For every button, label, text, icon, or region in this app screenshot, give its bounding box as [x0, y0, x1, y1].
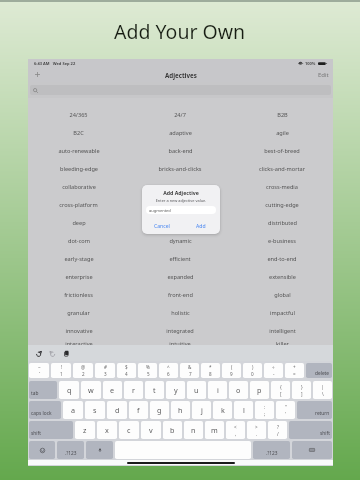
button[interactable]: expanded — [129, 268, 231, 286]
button[interactable]: granular — [28, 304, 129, 322]
button[interactable]: " — [276, 401, 295, 419]
button[interactable]: killer — [231, 340, 333, 345]
button[interactable]: clicks-and-mortar — [129, 178, 231, 196]
button[interactable]: 24/7 — [129, 106, 231, 124]
button[interactable]: B2C — [28, 124, 129, 142]
button[interactable]: $ — [117, 363, 136, 378]
button[interactable]: intelligent — [231, 322, 333, 340]
button[interactable]: Cancel — [142, 219, 181, 234]
button[interactable]: Add — [181, 219, 220, 234]
button[interactable]: Edit — [318, 71, 329, 79]
button[interactable]: end-to-end — [231, 250, 333, 268]
button[interactable]: adaptive — [129, 124, 231, 142]
button[interactable]: tab — [29, 381, 57, 399]
button[interactable]: * — [201, 363, 220, 378]
button[interactable]: delete — [306, 363, 332, 378]
button[interactable]: .?123 — [253, 441, 290, 459]
button[interactable]: Paste — [63, 350, 70, 357]
button[interactable]: interactive — [28, 340, 129, 345]
button[interactable]: bricks-and-clicks — [129, 160, 231, 178]
button[interactable]: shift — [29, 421, 73, 439]
button[interactable]: distributed — [231, 214, 333, 232]
button[interactable]: augmented — [146, 206, 216, 214]
button[interactable]: Dictation — [86, 441, 113, 459]
button[interactable]: ) — [243, 363, 262, 378]
button[interactable]: return — [297, 401, 332, 419]
button[interactable]: efficient — [129, 250, 231, 268]
button[interactable]: caps lock — [29, 401, 61, 419]
button[interactable]: cutting-edge — [231, 196, 333, 214]
button[interactable]: f — [129, 401, 148, 419]
button[interactable]: deep — [28, 214, 129, 232]
button[interactable]: q — [59, 381, 79, 399]
button[interactable]: o — [229, 381, 248, 399]
button[interactable]: Hide keyboard — [292, 441, 332, 459]
button[interactable]: } — [292, 381, 311, 399]
button[interactable]: .?123 — [57, 441, 84, 459]
button[interactable]: innovative — [28, 322, 129, 340]
button[interactable]: global — [231, 286, 333, 304]
button[interactable]: e-business — [231, 232, 333, 250]
button[interactable]: cross-media — [231, 178, 333, 196]
button[interactable]: & — [180, 363, 199, 378]
button[interactable]: B2B — [231, 106, 333, 124]
button[interactable]: k — [213, 401, 232, 419]
button[interactable]: z — [75, 421, 95, 439]
button[interactable]: % — [138, 363, 157, 378]
button[interactable]: e — [103, 381, 122, 399]
button[interactable]: a — [63, 401, 83, 419]
button[interactable]: extensible — [231, 268, 333, 286]
button[interactable]: collaborative — [28, 178, 129, 196]
button[interactable]: ^ — [159, 363, 178, 378]
button[interactable]: n — [184, 421, 203, 439]
button[interactable]: early-stage — [28, 250, 129, 268]
button[interactable]: best-of-breed — [231, 142, 333, 160]
button[interactable]: ÷ — [264, 363, 283, 378]
button[interactable]: i — [208, 381, 227, 399]
button[interactable]: m — [205, 421, 224, 439]
button[interactable]: { — [271, 381, 290, 399]
button[interactable]: c — [119, 421, 139, 439]
button[interactable]: Undo — [35, 350, 42, 357]
button[interactable]: frictionless — [28, 286, 129, 304]
button[interactable]: ? — [268, 421, 287, 439]
button[interactable]: ~ — [29, 363, 49, 378]
button[interactable]: v — [141, 421, 161, 439]
button[interactable]: x — [97, 421, 117, 439]
button[interactable]: > — [247, 421, 266, 439]
button[interactable]: front-end — [129, 286, 231, 304]
button[interactable]: back-end — [129, 142, 231, 160]
button[interactable]: integrated — [129, 322, 231, 340]
button[interactable]: j — [192, 401, 211, 419]
button[interactable]: dot-com — [28, 232, 129, 250]
button[interactable]: enterprise — [28, 268, 129, 286]
button[interactable]: h — [171, 401, 190, 419]
button[interactable]: Redo — [49, 350, 56, 357]
button[interactable]: ( — [222, 363, 241, 378]
button[interactable]: : — [255, 401, 274, 419]
button[interactable]: @ — [73, 363, 93, 378]
button[interactable]: p — [250, 381, 269, 399]
button[interactable]: l — [234, 401, 253, 419]
button[interactable]: dynamic — [129, 232, 231, 250]
button[interactable]: r — [124, 381, 143, 399]
button[interactable]: agile — [231, 124, 333, 142]
button[interactable]: cross-platform — [28, 196, 129, 214]
button[interactable]: ! — [51, 363, 71, 378]
button[interactable]: auto-renewable — [28, 142, 129, 160]
button[interactable]: collaborative — [129, 196, 231, 214]
button[interactable]: w — [81, 381, 101, 399]
button[interactable]: t — [145, 381, 164, 399]
button[interactable]: 24/365 — [28, 106, 129, 124]
button[interactable]: impactful — [231, 304, 333, 322]
button[interactable]: g — [150, 401, 169, 419]
button[interactable]: y — [166, 381, 185, 399]
button[interactable]: Emoji — [29, 441, 55, 459]
button[interactable]: Add — [32, 69, 43, 80]
button[interactable]: intuitive — [129, 340, 231, 345]
button[interactable]: holistic — [129, 304, 231, 322]
button[interactable]: bleeding-edge — [28, 160, 129, 178]
button[interactable]: s — [85, 401, 105, 419]
